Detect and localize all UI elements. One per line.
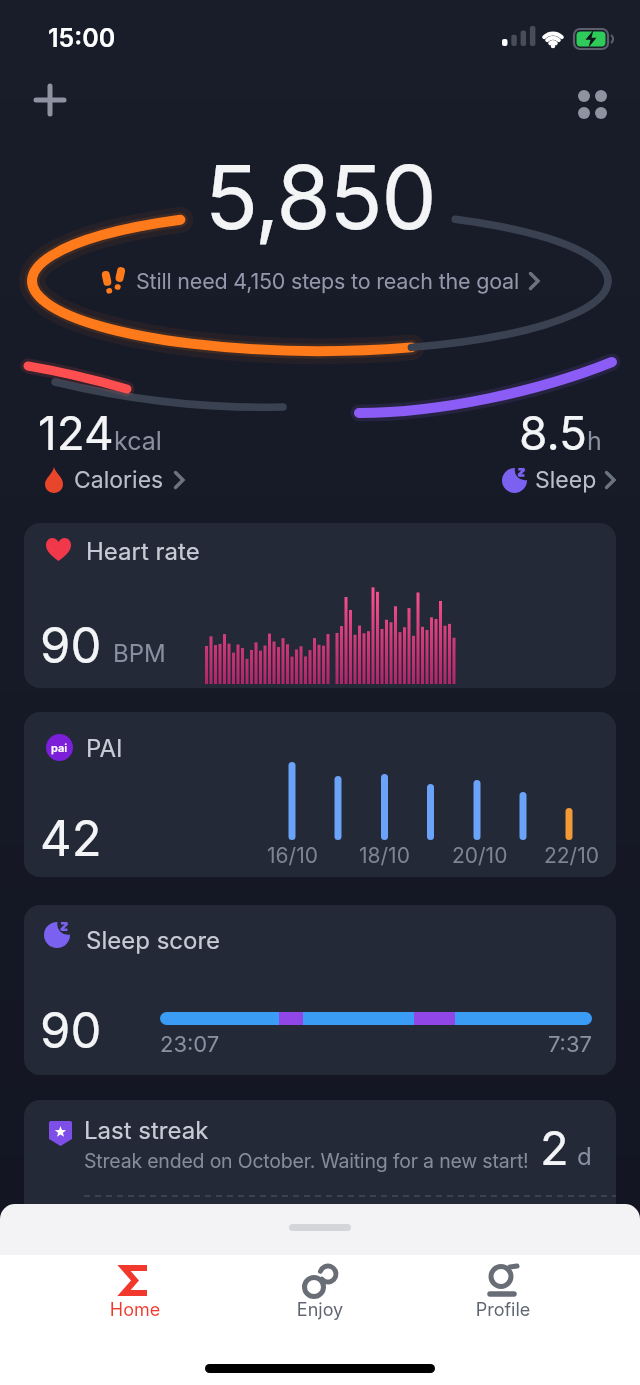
- staticText: Sleep: [535, 466, 597, 494]
- button[interactable]: [28, 80, 72, 124]
- button[interactable]: Enjoy: [270, 1257, 370, 1329]
- button[interactable]: Sleep score: [24, 905, 616, 1075]
- staticText: 90: [40, 616, 102, 675]
- staticText: 20/10: [452, 843, 508, 868]
- staticText: 124: [38, 405, 114, 461]
- staticText: d: [577, 1142, 592, 1171]
- staticText: Profile: [453, 1299, 553, 1321]
- staticText: PAI: [86, 734, 123, 763]
- staticText: 18/10: [359, 843, 410, 868]
- staticText: Still need 4,150 steps to reach the goal: [136, 268, 519, 294]
- button[interactable]: Still need 4,150 steps to reach the goal: [0, 264, 640, 298]
- button[interactable]: Sleep: [502, 466, 616, 494]
- staticText: 42: [40, 809, 102, 868]
- staticText: 16/10: [267, 843, 318, 868]
- button[interactable]: Profile: [453, 1257, 553, 1329]
- staticText: h: [587, 426, 602, 456]
- button[interactable]: pai: [24, 712, 616, 877]
- staticText: Streak ended on October. Waiting for a n…: [84, 1149, 529, 1173]
- staticText: Home: [85, 1299, 185, 1321]
- staticText: Calories: [74, 466, 164, 494]
- button[interactable]: Heart rate: [24, 523, 616, 688]
- staticText: 8.5: [519, 405, 587, 461]
- staticText: Sleep score: [86, 926, 221, 955]
- staticText: Last streak: [84, 1116, 209, 1145]
- button[interactable]: Calories: [42, 466, 185, 494]
- staticText: 23:07: [160, 1031, 220, 1058]
- staticText: Enjoy: [270, 1299, 370, 1321]
- staticText: 5,850: [0, 144, 640, 250]
- staticText: BPM: [113, 639, 166, 668]
- staticText: kcal: [114, 426, 162, 456]
- staticText: 2: [540, 1119, 569, 1176]
- button[interactable]: Last streak: [24, 1100, 616, 1250]
- staticText: 15:00: [48, 23, 116, 53]
- button[interactable]: Home: [85, 1257, 185, 1329]
- staticText: 22/10: [544, 843, 599, 868]
- staticText: 90: [40, 1001, 102, 1060]
- staticText: pai: [51, 741, 68, 754]
- staticText: 7:37: [24, 1031, 592, 1058]
- button[interactable]: [570, 82, 614, 126]
- staticText: Heart rate: [86, 537, 200, 566]
